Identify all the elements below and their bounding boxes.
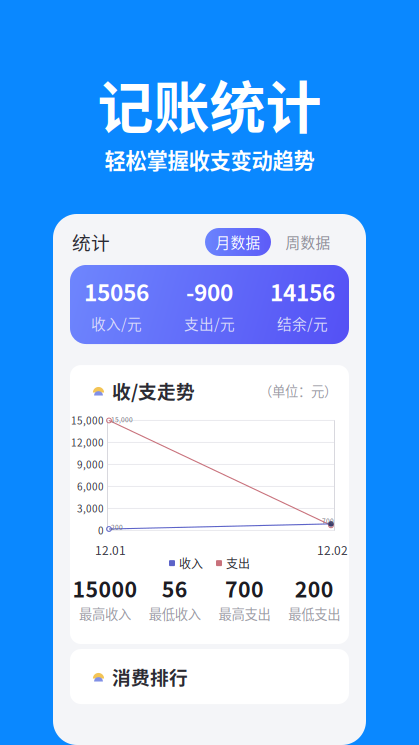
staticText: 700 (225, 573, 264, 604)
button[interactable]: 月数据 (205, 228, 271, 256)
staticText: 周数据 (285, 231, 330, 253)
staticText: 15,000 (111, 414, 133, 424)
staticText: 最低收入 (149, 604, 201, 623)
staticText: 6,000 (77, 479, 104, 493)
staticText: 收入 (179, 554, 203, 572)
staticText: 12.02 (317, 541, 348, 558)
staticText: 收/支走势 (112, 377, 195, 404)
staticText: 消费排行 (112, 663, 188, 690)
staticText: 700 (322, 516, 334, 526)
staticText: 15000 (72, 573, 137, 604)
staticText: 最高支出 (218, 604, 270, 623)
staticText: 200 (111, 522, 123, 532)
staticText: （单位：元） (259, 381, 337, 400)
staticText: 3,000 (77, 501, 104, 515)
staticText: 收入/元 (91, 313, 142, 334)
staticText: 月数据 (215, 231, 260, 253)
staticText: 15056 (84, 275, 149, 308)
staticText: 记账统计 (97, 63, 321, 144)
staticText: 最低支出 (288, 604, 340, 623)
staticText: 12,000 (71, 435, 104, 449)
staticText: 轻松掌握收支变动趋势 (104, 144, 314, 175)
staticText: 14156 (270, 275, 335, 308)
staticText: -900 (186, 275, 233, 308)
button[interactable]: 周数据 (271, 228, 345, 256)
staticText: 结余/元 (277, 313, 328, 334)
staticText: 15,000 (71, 413, 104, 427)
staticText: 9,000 (77, 457, 104, 471)
staticText: 200 (295, 573, 334, 604)
staticText: 统计 (72, 228, 110, 255)
staticText: 支出/元 (184, 313, 235, 334)
staticText: 支出 (226, 554, 250, 572)
staticText: 0 (98, 523, 104, 537)
staticText: 最高收入 (79, 604, 131, 623)
staticText: 56 (162, 573, 188, 604)
staticText: 12.01 (95, 541, 126, 558)
